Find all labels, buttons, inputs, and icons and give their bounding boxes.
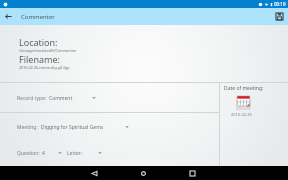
button[interactable]: Recent apps bbox=[185, 166, 199, 180]
button[interactable]: Save bbox=[271, 8, 288, 25]
staticText: Digging for Spiritual Gems bbox=[41, 124, 104, 131]
staticText: Filename: bbox=[19, 53, 60, 65]
button[interactable]: Pick date bbox=[236, 95, 251, 110]
button[interactable]: Back bbox=[87, 166, 101, 180]
button[interactable]: Letter: bbox=[64, 143, 104, 163]
button[interactable]: Question: bbox=[12, 143, 64, 163]
button[interactable]: Home bbox=[136, 166, 150, 180]
staticText: Record type: bbox=[17, 95, 47, 102]
staticText: Location: bbox=[19, 36, 58, 48]
staticText: Letter: bbox=[67, 150, 83, 157]
button[interactable]: Record type: bbox=[12, 88, 102, 108]
button[interactable]: Meeting: bbox=[12, 117, 134, 137]
staticText: Meeting: bbox=[17, 124, 38, 131]
staticText: 2016-02-26 bbox=[231, 112, 252, 117]
staticText: 4 bbox=[42, 150, 45, 157]
staticText: Question: bbox=[17, 150, 40, 157]
staticText: /storage/emulated/0/Commenter bbox=[19, 48, 77, 53]
staticText: 00:19 bbox=[274, 1, 286, 7]
staticText: Commenter bbox=[21, 13, 55, 21]
staticText: Date of meeting: bbox=[224, 85, 264, 92]
staticText: Comment bbox=[49, 95, 73, 102]
button[interactable]: Back bbox=[0, 8, 17, 25]
staticText: 2016-02-26-comm-dig-g4.3gp bbox=[19, 65, 70, 70]
